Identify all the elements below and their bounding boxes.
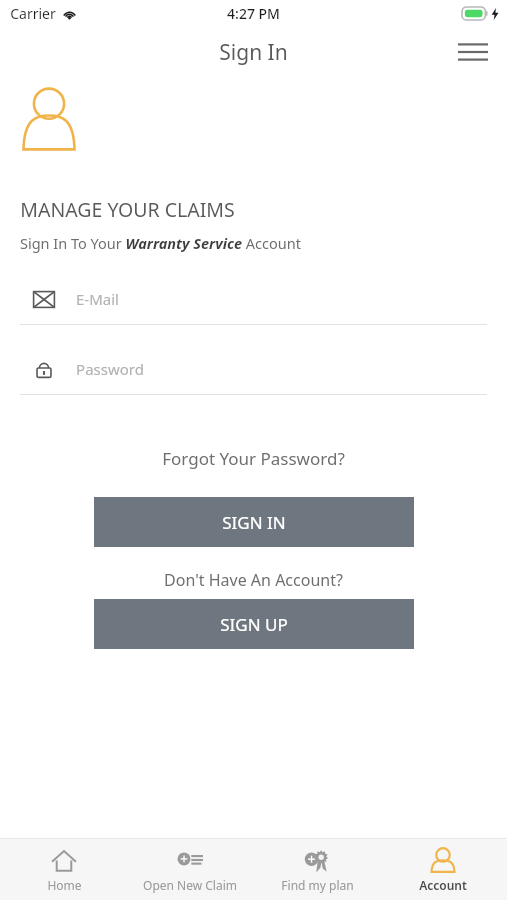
staticText: Home (47, 877, 82, 893)
staticText: Find my plan (281, 877, 354, 893)
staticText: Open New Claim (143, 877, 237, 893)
staticText: Forgot Your Password? (162, 447, 345, 470)
staticText: Sign In (219, 38, 288, 67)
staticText: Don't Have An Account? (164, 569, 343, 591)
staticText: 4:27 PM (227, 4, 280, 23)
staticText: SIGN UP (220, 613, 288, 636)
button[interactable]: Menu (453, 32, 493, 72)
button[interactable]: SIGN IN (94, 497, 414, 547)
staticText: E-Mail (76, 289, 119, 309)
button[interactable]: Password (20, 353, 487, 395)
button[interactable]: E-Mail (20, 283, 487, 325)
staticText: SIGN IN (222, 511, 286, 534)
button[interactable]: Home (2, 839, 126, 900)
button[interactable]: Open New Claim (128, 839, 252, 900)
button[interactable]: Account (381, 839, 505, 900)
button[interactable]: Find my plan (255, 839, 379, 900)
staticText: MANAGE YOUR CLAIMS (20, 196, 235, 223)
staticText: Password (76, 359, 144, 379)
button[interactable]: SIGN UP (94, 599, 414, 649)
staticText: Account (419, 877, 467, 893)
staticText: Carrier (10, 4, 56, 23)
staticText: Sign In To Your Warranty Service Account (20, 233, 301, 253)
button[interactable]: Forgot Your Password? (0, 443, 507, 473)
